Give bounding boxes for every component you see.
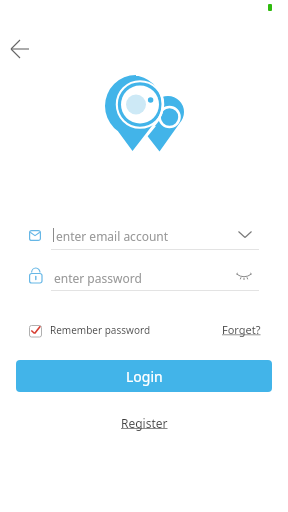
button[interactable]: enter email account — [16, 220, 272, 250]
staticText: Remember password — [50, 323, 151, 337]
staticText: Forget? — [222, 322, 261, 337]
staticText: Login — [126, 367, 163, 386]
button[interactable]: Remember password — [29, 322, 151, 338]
staticText: Register — [121, 415, 168, 431]
button[interactable]: Forget? — [222, 322, 261, 337]
button[interactable] — [6, 36, 34, 62]
staticText: enter email account — [56, 228, 169, 244]
button[interactable]: enter password — [16, 262, 272, 292]
staticText: enter password — [54, 270, 142, 286]
button[interactable]: Login — [16, 360, 272, 392]
button[interactable]: Register — [121, 415, 168, 431]
